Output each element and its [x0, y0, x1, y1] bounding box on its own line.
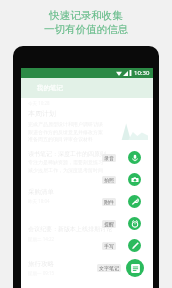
staticText: 提醒	[104, 221, 114, 227]
button[interactable]: 拍照	[128, 173, 141, 186]
staticText: 旅行攻略	[28, 260, 54, 268]
staticText: 录音	[104, 155, 114, 161]
button[interactable]: 手写	[102, 242, 116, 250]
staticText: 我的笔记	[37, 84, 63, 92]
staticText: 完成产品原型设计和用户调研访谈	[28, 121, 103, 127]
button[interactable]: 附件	[128, 195, 141, 208]
button[interactable]: 拍照	[102, 176, 116, 184]
button[interactable]: 附件	[102, 198, 116, 206]
staticText: 采购清单	[28, 188, 54, 196]
staticText: 本周计划	[28, 109, 56, 118]
staticText: 10:30	[134, 69, 150, 77]
staticText: 跟进合作方的反馈意见并修改方案	[28, 129, 103, 135]
button[interactable]: 录音	[102, 154, 116, 162]
button[interactable]: 提醒	[128, 217, 141, 230]
staticText: 一切有价值的信息	[44, 23, 128, 36]
staticText: 附件	[104, 199, 114, 205]
button[interactable]: 文字笔记	[126, 259, 144, 277]
button[interactable]: 提醒	[102, 220, 116, 228]
staticText: 手写	[104, 243, 114, 249]
staticText: 会议纪要：新版本上线排期讨论	[28, 225, 112, 233]
staticText: 读书笔记：深度工作的四原则	[28, 150, 106, 158]
button[interactable]: 文字笔记	[97, 264, 121, 272]
staticText: 文字笔记	[99, 265, 119, 271]
staticText: 专注力是稀缺资源，需要刻意练习	[28, 159, 103, 165]
staticText: 快速记录和收集	[49, 9, 123, 22]
button[interactable]: 手写	[128, 239, 141, 252]
staticText: 准备周五的项目评审会议材料	[28, 136, 93, 142]
staticText: 拍照	[104, 177, 114, 183]
button[interactable]: 录音	[128, 151, 141, 164]
staticText: 减少浅层工作，为深度思考留时间	[28, 167, 103, 173]
